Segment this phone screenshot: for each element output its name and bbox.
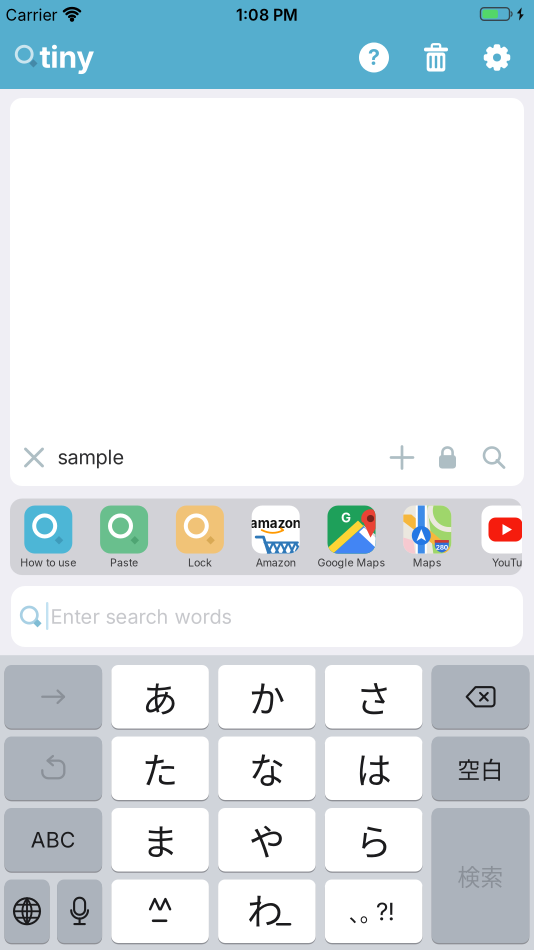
staticText: Paste: [110, 556, 138, 569]
staticText: ABC: [31, 827, 76, 852]
staticText: Google Maps: [317, 556, 385, 569]
staticText: amazon: [250, 515, 301, 531]
staticText: な: [249, 742, 285, 794]
button[interactable]: た: [111, 736, 209, 800]
button[interactable]: amazon: [238, 498, 314, 575]
button[interactable]: Undo: [4, 736, 102, 800]
button[interactable]: あ: [111, 665, 209, 728]
staticText: YouTube: [492, 556, 534, 569]
button[interactable]: ら: [325, 808, 422, 871]
button[interactable]: な: [218, 736, 316, 800]
button[interactable]: や: [218, 808, 316, 871]
staticText: 、: [349, 897, 370, 927]
staticText: ま: [142, 814, 178, 866]
staticText: Amazon: [256, 556, 296, 569]
staticText: 。: [360, 897, 381, 927]
staticText: 280: [436, 543, 448, 551]
button[interactable]: YouTube: [467, 498, 534, 575]
button[interactable]: Next keyboard: [4, 879, 49, 943]
button[interactable]: Lock: [438, 446, 457, 469]
staticText: 検索: [457, 859, 503, 892]
staticText: 空白: [457, 752, 503, 785]
staticText: sample: [57, 445, 124, 469]
button[interactable]: G: [313, 498, 389, 575]
button[interactable]: 検索: [432, 808, 529, 943]
button[interactable]: Lock: [162, 498, 238, 575]
staticText: わ: [247, 883, 283, 935]
button[interactable]: Settings: [483, 44, 510, 71]
staticText: Lock: [188, 556, 212, 569]
button[interactable]: さ: [325, 665, 422, 728]
button[interactable]: Enter search words: [11, 586, 523, 647]
staticText: How to use: [20, 556, 76, 569]
button[interactable]: Dictation: [57, 879, 102, 943]
button[interactable]: ABC: [4, 808, 102, 871]
staticText: tiny: [39, 38, 94, 75]
button[interactable]: ま: [111, 808, 209, 871]
button[interactable]: 、: [325, 879, 422, 943]
staticText: か: [249, 671, 285, 723]
staticText: Enter search words: [50, 605, 231, 628]
staticText: ?: [368, 44, 380, 70]
staticText: Maps: [413, 556, 442, 569]
button[interactable]: Help: [359, 42, 389, 72]
button[interactable]: Delete: [432, 665, 529, 728]
staticText: ?!: [376, 897, 395, 926]
button[interactable]: わ: [218, 879, 316, 943]
staticText: 1:08 PM: [236, 6, 298, 24]
staticText: あ: [142, 671, 178, 723]
staticText: G: [341, 510, 351, 525]
button[interactable]: Delete history: [423, 42, 449, 72]
staticText: さ: [356, 671, 392, 723]
button[interactable]: か: [218, 665, 316, 728]
button[interactable]: 280: [389, 498, 465, 575]
button[interactable]: Next: [4, 665, 102, 728]
button[interactable]: Kaomoji: [111, 879, 209, 943]
button[interactable]: 空白: [432, 736, 529, 800]
staticText: は: [356, 742, 392, 794]
button[interactable]: Clear: [24, 448, 43, 467]
staticText: ら: [356, 814, 392, 866]
button[interactable]: Add: [390, 446, 413, 469]
staticText: Carrier: [5, 6, 57, 24]
staticText: た: [142, 742, 178, 794]
button[interactable]: Search: [483, 446, 505, 468]
button[interactable]: は: [325, 736, 422, 800]
button[interactable]: Paste: [86, 498, 162, 575]
button[interactable]: sample: [57, 445, 124, 469]
button[interactable]: How to use: [10, 498, 86, 575]
staticText: や: [249, 814, 285, 866]
